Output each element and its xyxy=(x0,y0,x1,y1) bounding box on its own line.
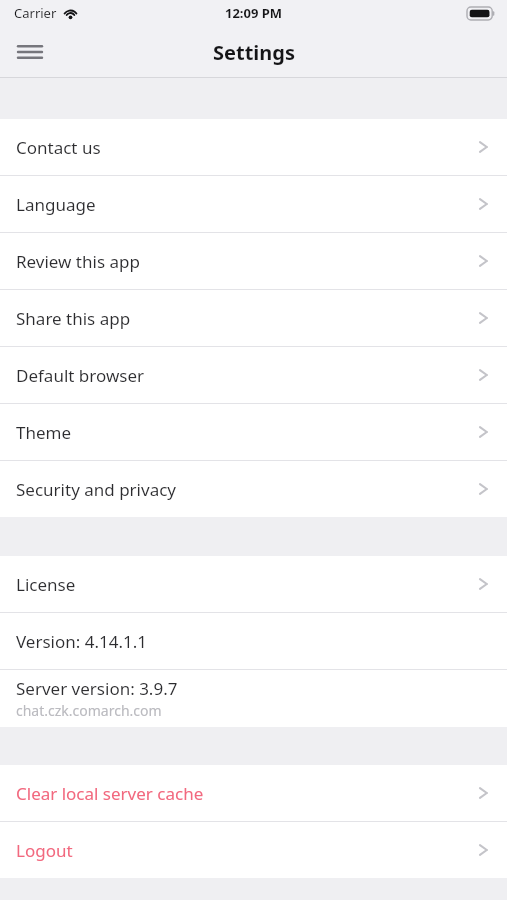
staticText: Theme xyxy=(16,421,478,444)
staticText: License xyxy=(16,573,478,596)
staticText: Language xyxy=(16,193,478,216)
staticText: Default browser xyxy=(16,364,478,387)
staticText: Security and privacy xyxy=(16,478,478,501)
staticText: Server version: 3.9.7 xyxy=(16,677,178,700)
staticText: Version: 4.14.1.1 xyxy=(16,630,148,653)
button[interactable]: Contact us xyxy=(0,119,507,175)
staticText: Review this app xyxy=(16,250,478,273)
staticText: Carrier xyxy=(14,4,57,22)
button[interactable]: Menu xyxy=(8,30,52,74)
button[interactable]: Review this app xyxy=(0,233,507,289)
staticText: Clear local server cache xyxy=(16,782,478,805)
button[interactable]: Language xyxy=(0,176,507,232)
staticText: Settings xyxy=(213,39,295,66)
button[interactable]: Logout xyxy=(0,822,507,878)
button[interactable]: Clear local server cache xyxy=(0,765,507,821)
button[interactable]: Share this app xyxy=(0,290,507,346)
staticText: Logout xyxy=(16,839,478,862)
button[interactable]: Default browser xyxy=(0,347,507,403)
staticText: chat.czk.comarch.com xyxy=(16,701,162,720)
staticText: Contact us xyxy=(16,136,478,159)
button[interactable]: Theme xyxy=(0,404,507,460)
staticText: 12:09 PM xyxy=(225,4,283,22)
staticText: Share this app xyxy=(16,307,478,330)
button[interactable]: License xyxy=(0,556,507,612)
button[interactable]: Security and privacy xyxy=(0,461,507,517)
